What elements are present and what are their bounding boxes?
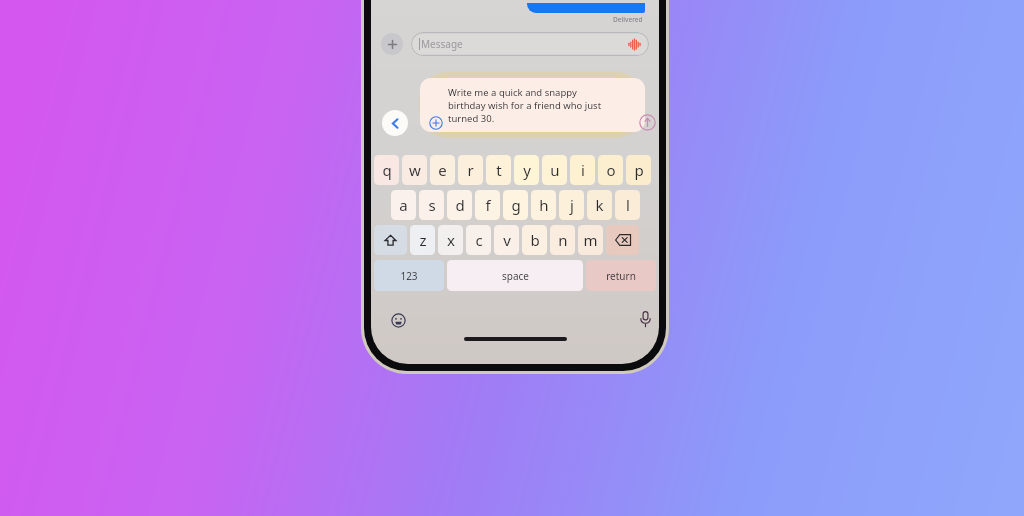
button[interactable]: m — [578, 225, 603, 255]
button[interactable]: b — [522, 225, 547, 255]
staticText: g — [511, 195, 521, 215]
button[interactable]: k — [587, 190, 612, 220]
button[interactable]: Add attachment — [381, 33, 403, 55]
button[interactable]: z — [410, 225, 435, 255]
button[interactable]: i — [570, 155, 595, 185]
staticText: space — [502, 269, 529, 283]
button[interactable]: t — [486, 155, 511, 185]
staticText: i — [581, 160, 585, 180]
staticText: p — [634, 160, 644, 180]
staticText: k — [595, 195, 604, 215]
button[interactable]: Send — [636, 111, 658, 133]
button[interactable]: return — [586, 260, 656, 291]
staticText: a — [399, 195, 408, 215]
button[interactable] — [606, 225, 639, 255]
staticText: Message — [421, 37, 463, 51]
staticText: d — [455, 195, 465, 215]
staticText: w — [409, 160, 421, 180]
staticText: m — [583, 230, 598, 250]
staticText: v — [503, 230, 511, 250]
button[interactable]: Add — [426, 113, 445, 132]
button[interactable]: q — [374, 155, 399, 185]
staticText: s — [428, 195, 436, 215]
button[interactable]: o — [598, 155, 623, 185]
staticText: 123 — [400, 269, 418, 283]
staticText: j — [570, 195, 574, 215]
button[interactable]: s — [419, 190, 444, 220]
staticText: r — [467, 160, 474, 180]
button[interactable]: r — [458, 155, 483, 185]
button[interactable]: 123 — [374, 260, 444, 291]
button[interactable]: space — [447, 260, 583, 291]
staticText: f — [485, 195, 491, 215]
button[interactable]: d — [447, 190, 472, 220]
button[interactable]: Emoji — [388, 310, 408, 330]
staticText: return — [606, 269, 636, 283]
staticText: b — [530, 230, 540, 250]
staticText: l — [626, 195, 630, 215]
staticText: z — [419, 230, 427, 250]
staticText: x — [447, 230, 455, 250]
button[interactable]: l — [615, 190, 640, 220]
staticText: o — [606, 160, 616, 180]
button[interactable]: Dictate — [634, 308, 656, 330]
button[interactable]: x — [438, 225, 463, 255]
button[interactable]: g — [503, 190, 528, 220]
button[interactable]: j — [559, 190, 584, 220]
button[interactable]: Write me a quick and snappy — [420, 78, 645, 132]
button[interactable]: Back — [382, 110, 408, 136]
staticText: q — [382, 160, 392, 180]
staticText: c — [475, 230, 483, 250]
staticText: u — [550, 160, 560, 180]
staticText: Write me a quick and snappy — [448, 86, 577, 99]
button[interactable]: c — [466, 225, 491, 255]
button[interactable]: y — [514, 155, 539, 185]
button[interactable]: Message — [411, 32, 649, 56]
button[interactable]: n — [550, 225, 575, 255]
staticText: t — [496, 160, 502, 180]
button[interactable]: v — [494, 225, 519, 255]
button[interactable]: h — [531, 190, 556, 220]
button[interactable]: f — [475, 190, 500, 220]
button[interactable]: e — [430, 155, 455, 185]
staticText: Delivered — [613, 15, 643, 24]
staticText: turned 30. — [448, 112, 495, 125]
button[interactable]: u — [542, 155, 567, 185]
button[interactable] — [374, 225, 407, 255]
staticText: y — [523, 160, 531, 180]
staticText: e — [438, 160, 447, 180]
button[interactable]: p — [626, 155, 651, 185]
button[interactable]: w — [402, 155, 427, 185]
staticText: h — [539, 195, 549, 215]
staticText: n — [558, 230, 568, 250]
button[interactable]: a — [391, 190, 416, 220]
staticText: birthday wish for a friend who just — [448, 99, 602, 112]
